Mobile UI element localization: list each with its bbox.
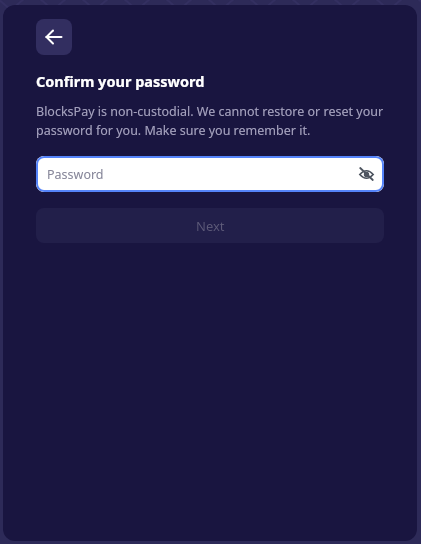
- staticText: BlocksPay is non-custodial. We cannot re…: [36, 103, 384, 138]
- button[interactable]: Password: [36, 156, 384, 192]
- staticText: Next: [196, 217, 225, 235]
- button[interactable]: Next: [36, 208, 384, 243]
- staticText: Password: [47, 166, 104, 183]
- staticText: Confirm your password: [36, 71, 205, 91]
- button[interactable]: [36, 19, 72, 55]
